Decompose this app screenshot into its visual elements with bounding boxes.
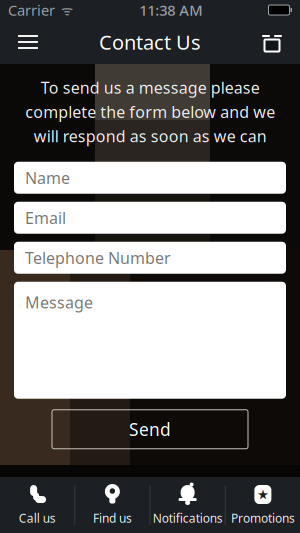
staticText: Name [25,167,70,188]
button[interactable]: Telephone Number [14,242,286,274]
button[interactable]: Notifications [150,477,225,533]
button[interactable]: Name [14,162,286,194]
staticText: Email [25,207,66,228]
staticText: ★ [257,487,269,502]
staticText: Send [129,418,171,441]
staticText: Telephone Number [25,247,171,268]
staticText: ᯤ [55,1,73,19]
staticText: Carrier [8,0,55,20]
button[interactable]: Menu [6,20,50,64]
staticText: Message [25,292,93,313]
staticText: 11:38 AM [139,0,202,20]
staticText: Find us [93,510,132,526]
button[interactable]: Find us [75,477,149,533]
button[interactable]: Home [250,20,294,64]
staticText: Notifications [153,510,223,526]
button[interactable]: Send [52,410,248,449]
staticText: Contact Us [99,29,201,55]
button[interactable]: Message [14,282,286,399]
staticText: Call us [19,510,56,526]
button[interactable]: Email [14,202,286,234]
staticText: To send us a message please complete the… [25,77,275,147]
button[interactable]: ★ [226,477,300,533]
button[interactable]: Call us [0,477,74,533]
staticText: Promotions [231,510,295,526]
